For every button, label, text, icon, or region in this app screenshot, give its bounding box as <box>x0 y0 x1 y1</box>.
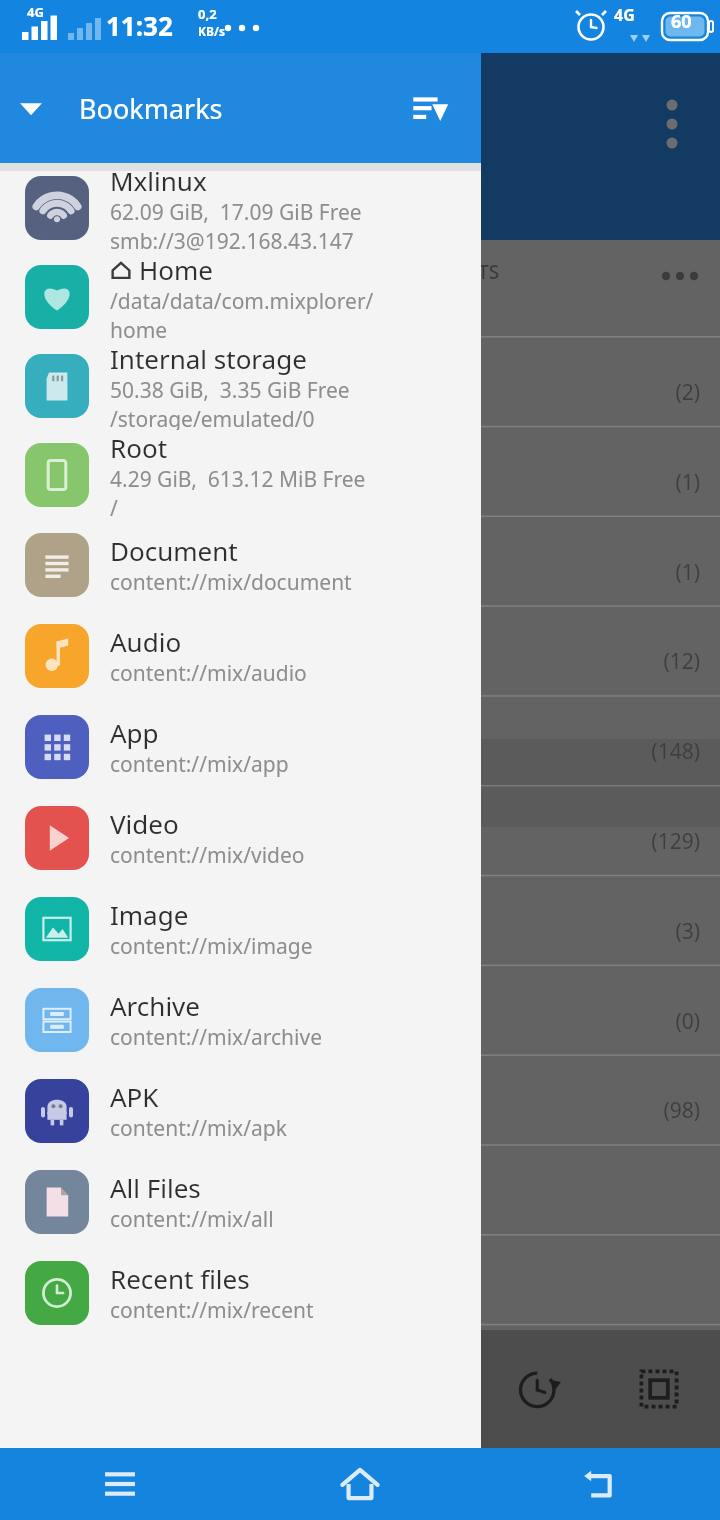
staticText: Image <box>110 897 189 932</box>
staticText: Archive <box>110 988 200 1023</box>
staticText: home <box>110 316 168 341</box>
staticText: Root <box>110 430 168 465</box>
staticText: (1) <box>560 558 700 587</box>
button[interactable]: Internal storage <box>0 341 481 430</box>
staticText: smb://3@192.168.43.147 <box>110 227 354 252</box>
staticText: 4.29 GiB, 613.12 MiB Free <box>110 465 366 494</box>
staticText: 4G <box>614 4 635 26</box>
button[interactable]: Expand <box>0 77 62 139</box>
staticText: 62.09 GiB, 17.09 GiB Free <box>110 198 362 227</box>
staticText: content://mix/video <box>110 841 305 870</box>
staticText: (2) <box>560 378 700 407</box>
staticText: /data/data/com.mixplorer/ <box>110 287 374 316</box>
staticText: 50.38 GiB, 3.35 GiB Free <box>110 376 350 405</box>
button[interactable]: Home <box>0 252 481 341</box>
staticText: (12) <box>560 647 700 676</box>
button[interactable]: Document <box>0 519 481 610</box>
button[interactable]: Menu <box>0 1448 240 1520</box>
staticText: content://mix/document <box>110 568 352 597</box>
staticText: (1) <box>560 468 700 497</box>
staticText: Audio <box>110 624 182 659</box>
staticText: (98) <box>560 1096 700 1125</box>
button[interactable]: Home <box>240 1448 480 1520</box>
staticText: / <box>110 494 118 519</box>
button[interactable]: Select all <box>622 1352 696 1426</box>
staticText: 60 <box>671 9 692 34</box>
button[interactable]: Archive <box>0 974 481 1065</box>
staticText: Home <box>139 252 213 287</box>
staticText: Internal storage <box>110 341 307 376</box>
staticText: /storage/emulated/0 <box>110 405 315 430</box>
staticText: content://mix/image <box>110 932 313 961</box>
staticText: (148) <box>560 737 700 766</box>
staticText: Video <box>110 806 179 841</box>
staticText: 4G <box>27 3 44 21</box>
staticText: KB/s <box>198 23 225 39</box>
staticText: content://mix/app <box>110 750 289 779</box>
staticText: content://mix/archive <box>110 1023 322 1052</box>
staticText: (129) <box>560 827 700 856</box>
staticText: TS <box>478 259 500 285</box>
button[interactable]: Audio <box>0 610 481 701</box>
staticText: Recent files <box>110 1261 250 1296</box>
staticText: Bookmarks <box>79 90 223 127</box>
staticText: content://mix/audio <box>110 659 307 688</box>
staticText: Mxlinux <box>110 163 207 198</box>
staticText: content://mix/apk <box>110 1114 287 1143</box>
button[interactable]: Root <box>0 430 481 519</box>
button[interactable]: Mxlinux <box>0 163 481 252</box>
staticText: 0,2 <box>198 5 217 23</box>
button[interactable]: Image <box>0 883 481 974</box>
staticText: APK <box>110 1079 159 1114</box>
button[interactable]: Sort <box>393 71 467 145</box>
staticText: content://mix/all <box>110 1205 274 1234</box>
staticText: 11:32 <box>106 8 173 43</box>
staticText: App <box>110 715 159 750</box>
button[interactable]: All Files <box>0 1156 481 1247</box>
staticText: All Files <box>110 1170 201 1205</box>
button[interactable]: History <box>502 1352 576 1426</box>
button[interactable]: Video <box>0 792 481 883</box>
staticText: (0) <box>560 1007 700 1036</box>
staticText: content://mix/recent <box>110 1296 314 1325</box>
button[interactable]: Back <box>480 1448 720 1520</box>
button[interactable]: App <box>0 701 481 792</box>
staticText: Document <box>110 533 238 568</box>
button[interactable]: APK <box>0 1065 481 1156</box>
staticText: (3) <box>560 917 700 946</box>
button[interactable]: Recent files <box>0 1247 481 1338</box>
